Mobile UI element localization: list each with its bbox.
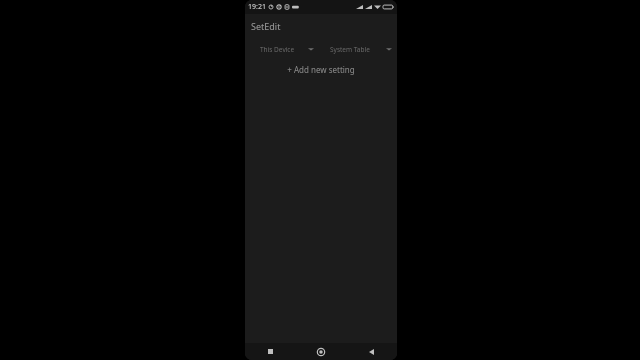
- staticText: 19:21: [248, 2, 266, 12]
- button[interactable]: This Device: [259, 40, 315, 58]
- button[interactable]: System Table: [329, 40, 393, 58]
- button[interactable]: Home: [295, 343, 346, 360]
- staticText: + Add new setting: [287, 64, 355, 75]
- button[interactable]: + Add new setting: [245, 60, 397, 78]
- button[interactable]: Back: [346, 343, 397, 360]
- staticText: This Device: [260, 45, 295, 54]
- button[interactable]: Recents: [245, 343, 295, 360]
- staticText: SetEdit: [251, 20, 281, 32]
- staticText: System Table: [330, 45, 370, 54]
